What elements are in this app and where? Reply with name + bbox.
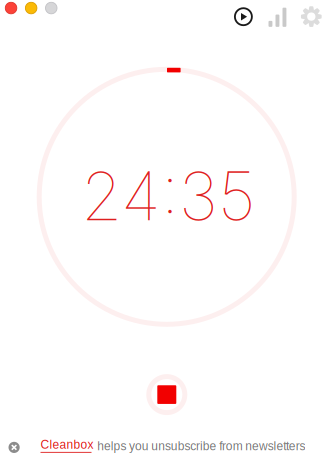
staticText: 24:35 (81, 156, 256, 236)
staticText: Cleanbox (40, 438, 93, 451)
button[interactable]: Play (234, 7, 253, 26)
button[interactable]: Settings (301, 6, 322, 27)
button[interactable]: Cleanbox (40, 439, 91, 451)
button[interactable]: Statistics (268, 6, 286, 27)
staticText: helps you unsubscribe from newsletters (91, 439, 305, 453)
button[interactable]: Dismiss (2, 435, 26, 459)
button[interactable]: Stop timer (144, 372, 190, 418)
